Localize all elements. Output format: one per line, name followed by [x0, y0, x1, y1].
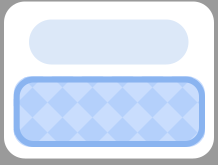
- button[interactable]: Placeholder row: [29, 19, 188, 64]
- button[interactable]: Selected row: [14, 76, 205, 147]
